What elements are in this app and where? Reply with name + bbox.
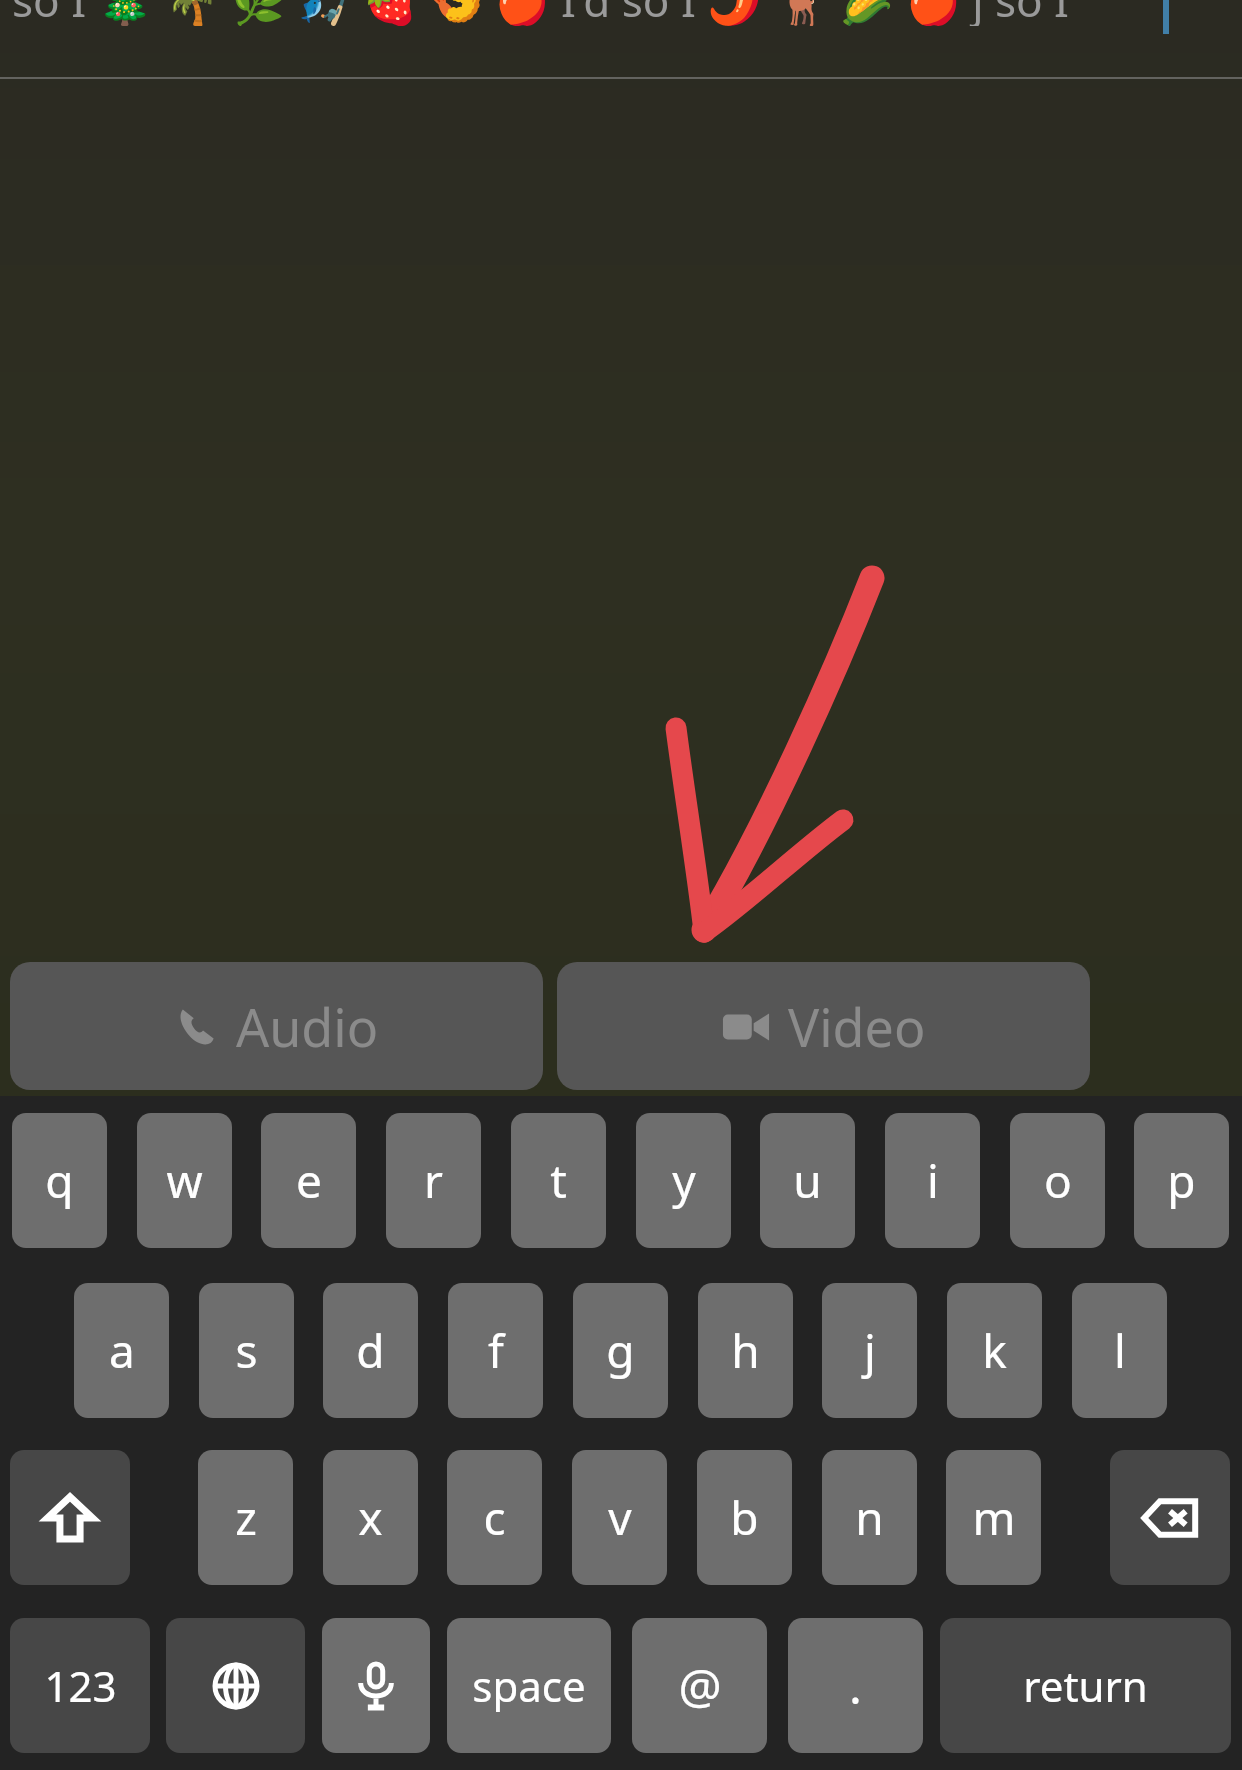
button[interactable]: @ xyxy=(632,1618,767,1753)
button[interactable]: k xyxy=(947,1283,1042,1418)
button[interactable]: Next keyboard xyxy=(166,1618,305,1753)
staticText: @ xyxy=(678,1653,722,1718)
staticText: return xyxy=(1023,1657,1148,1714)
staticText: s xyxy=(235,1319,258,1382)
staticText: e xyxy=(296,1149,322,1212)
staticText: v xyxy=(608,1486,632,1549)
button[interactable]: v xyxy=(572,1450,667,1585)
staticText: Audio xyxy=(236,991,379,1062)
staticText: m xyxy=(972,1486,1016,1549)
button[interactable]: o xyxy=(1010,1113,1105,1248)
staticText: p xyxy=(1167,1149,1196,1212)
staticText: x xyxy=(358,1486,383,1549)
staticText: so I 🎄 🌴 🌿 🎣 🍓 🍤 🍎 I'd so I 🌶 🦌 🌽 🍎 j so… xyxy=(12,0,1069,26)
button[interactable]: h xyxy=(698,1283,793,1418)
button[interactable]: Backspace xyxy=(1110,1450,1230,1585)
button[interactable]: y xyxy=(636,1113,731,1248)
staticText: f xyxy=(488,1319,504,1382)
staticText: l xyxy=(1114,1319,1126,1382)
staticText: q xyxy=(45,1149,74,1212)
staticText: t xyxy=(550,1149,567,1212)
button[interactable]: q xyxy=(12,1113,107,1248)
button[interactable]: j xyxy=(822,1283,917,1418)
button[interactable]: e xyxy=(261,1113,356,1248)
button[interactable]: u xyxy=(760,1113,855,1248)
button[interactable]: f xyxy=(448,1283,543,1418)
staticText: o xyxy=(1044,1149,1072,1212)
staticText: b xyxy=(730,1486,759,1549)
staticText: y xyxy=(672,1149,696,1212)
button[interactable]: . xyxy=(788,1618,923,1753)
button[interactable]: n xyxy=(822,1450,917,1585)
staticText: space xyxy=(472,1657,586,1714)
staticText: i xyxy=(927,1149,939,1212)
staticText: z xyxy=(235,1486,257,1549)
staticText: w xyxy=(166,1149,203,1212)
staticText: a xyxy=(109,1319,135,1382)
staticText: 123 xyxy=(44,1657,117,1714)
staticText: c xyxy=(483,1486,506,1549)
button[interactable]: Audio xyxy=(10,962,543,1090)
staticText: d xyxy=(356,1319,385,1382)
button[interactable]: d xyxy=(323,1283,418,1418)
staticText: h xyxy=(731,1319,760,1382)
button[interactable]: Dictate xyxy=(322,1618,430,1753)
staticText: k xyxy=(982,1319,1007,1382)
button[interactable]: 123 xyxy=(10,1618,150,1753)
staticText: Video xyxy=(788,991,926,1062)
button[interactable]: z xyxy=(198,1450,293,1585)
staticText: n xyxy=(855,1486,884,1549)
staticText: . xyxy=(849,1653,862,1718)
button[interactable]: return xyxy=(940,1618,1231,1753)
button[interactable]: b xyxy=(697,1450,792,1585)
button[interactable]: r xyxy=(386,1113,481,1248)
button[interactable]: space xyxy=(447,1618,611,1753)
staticText: j xyxy=(864,1319,876,1382)
button[interactable]: s xyxy=(199,1283,294,1418)
button[interactable]: l xyxy=(1072,1283,1167,1418)
button[interactable]: x xyxy=(323,1450,418,1585)
button[interactable]: Shift xyxy=(10,1450,130,1585)
button[interactable]: Video xyxy=(557,962,1090,1090)
staticText: g xyxy=(606,1319,635,1382)
button[interactable]: w xyxy=(137,1113,232,1248)
button[interactable]: m xyxy=(946,1450,1041,1585)
button[interactable]: g xyxy=(573,1283,668,1418)
button[interactable]: c xyxy=(447,1450,542,1585)
button[interactable]: a xyxy=(74,1283,169,1418)
staticText: r xyxy=(424,1149,443,1212)
button[interactable]: t xyxy=(511,1113,606,1248)
staticText: u xyxy=(793,1149,822,1212)
button[interactable]: p xyxy=(1134,1113,1229,1248)
button[interactable]: i xyxy=(885,1113,980,1248)
